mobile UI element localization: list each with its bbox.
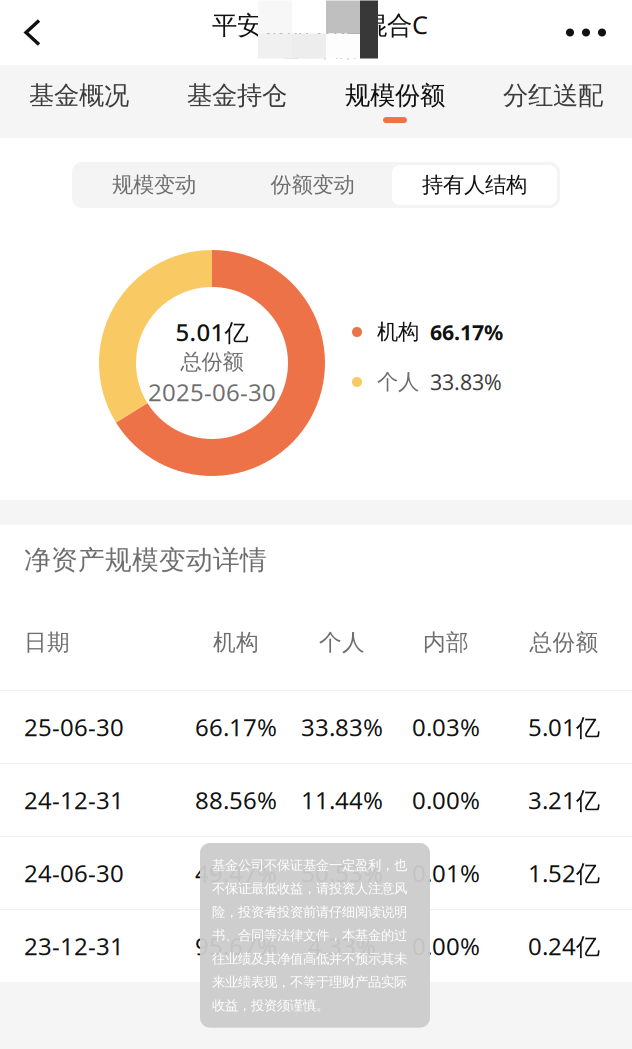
staticText: 49.47% <box>195 857 277 889</box>
staticText: 0.03% <box>412 711 480 743</box>
staticText: 份额变动 <box>270 172 354 198</box>
staticText: 个人 <box>377 369 419 395</box>
staticText: 个人 <box>319 629 365 656</box>
staticText: 24-06-30 <box>24 857 124 889</box>
button[interactable]: 基金持仓 <box>158 65 316 138</box>
staticText: 5.01亿 <box>528 711 600 743</box>
staticText: 净资产规模变动详情 <box>24 544 267 576</box>
staticText: 0.01% <box>412 857 480 889</box>
staticText: 5.01亿 <box>175 316 248 348</box>
staticText: 总份额 <box>180 349 243 375</box>
staticText: 0.00% <box>412 784 480 816</box>
staticText: 3.21亿 <box>528 784 600 816</box>
staticText: 分红送配 <box>503 80 603 111</box>
staticText: 机构 <box>377 319 419 345</box>
staticText: 基金持仓 <box>187 80 287 111</box>
staticText: 23-12-31 <box>24 930 124 962</box>
staticText: 0.00% <box>412 930 480 962</box>
staticText: 规模变动 <box>112 172 196 198</box>
staticText: 95.67% <box>195 930 277 962</box>
button[interactable]: 份额变动 <box>233 165 392 205</box>
staticText: 66.17% <box>195 711 277 743</box>
staticText: 持有人结构 <box>422 172 527 198</box>
staticText: 24-12-31 <box>24 784 124 816</box>
staticText: 总份额 <box>529 629 598 656</box>
staticText: 33.83% <box>430 368 502 396</box>
staticText: 平安策略先锋混合C <box>212 8 428 41</box>
staticText: 66.17% <box>430 318 503 346</box>
button[interactable]: 规模变动 <box>75 165 233 205</box>
staticText: 33.83% <box>301 711 383 743</box>
staticText: 11.44% <box>301 784 383 816</box>
staticText: 25-06-30 <box>24 711 124 743</box>
staticText: 基金公司不保证基金一定盈利，也不保证最低收益，请投资人注意风险，投资者投资前请仔… <box>212 857 407 1014</box>
staticText: 规模份额 <box>345 80 445 111</box>
staticText: 内部 <box>423 629 469 656</box>
staticText: 50.53% <box>301 857 383 889</box>
button[interactable]: 规模份额 <box>316 65 474 138</box>
button[interactable]: 分红送配 <box>474 65 632 138</box>
staticText: 1.52亿 <box>528 857 600 889</box>
button[interactable]: 基金概况 <box>0 65 158 138</box>
staticText: 日期 <box>24 629 70 656</box>
staticText: 0.24亿 <box>528 930 600 962</box>
staticText: 基金概况 <box>29 80 129 111</box>
staticText: 2025-06-30 <box>148 376 276 408</box>
staticText: 88.56% <box>195 784 277 816</box>
button[interactable]: More <box>540 8 632 56</box>
button[interactable]: 持有人结构 <box>392 165 557 205</box>
staticText: 基金档案 <box>282 39 358 62</box>
staticText: 机构 <box>213 629 259 656</box>
staticText: 4.33% <box>308 930 376 962</box>
button[interactable]: Back <box>0 0 61 64</box>
